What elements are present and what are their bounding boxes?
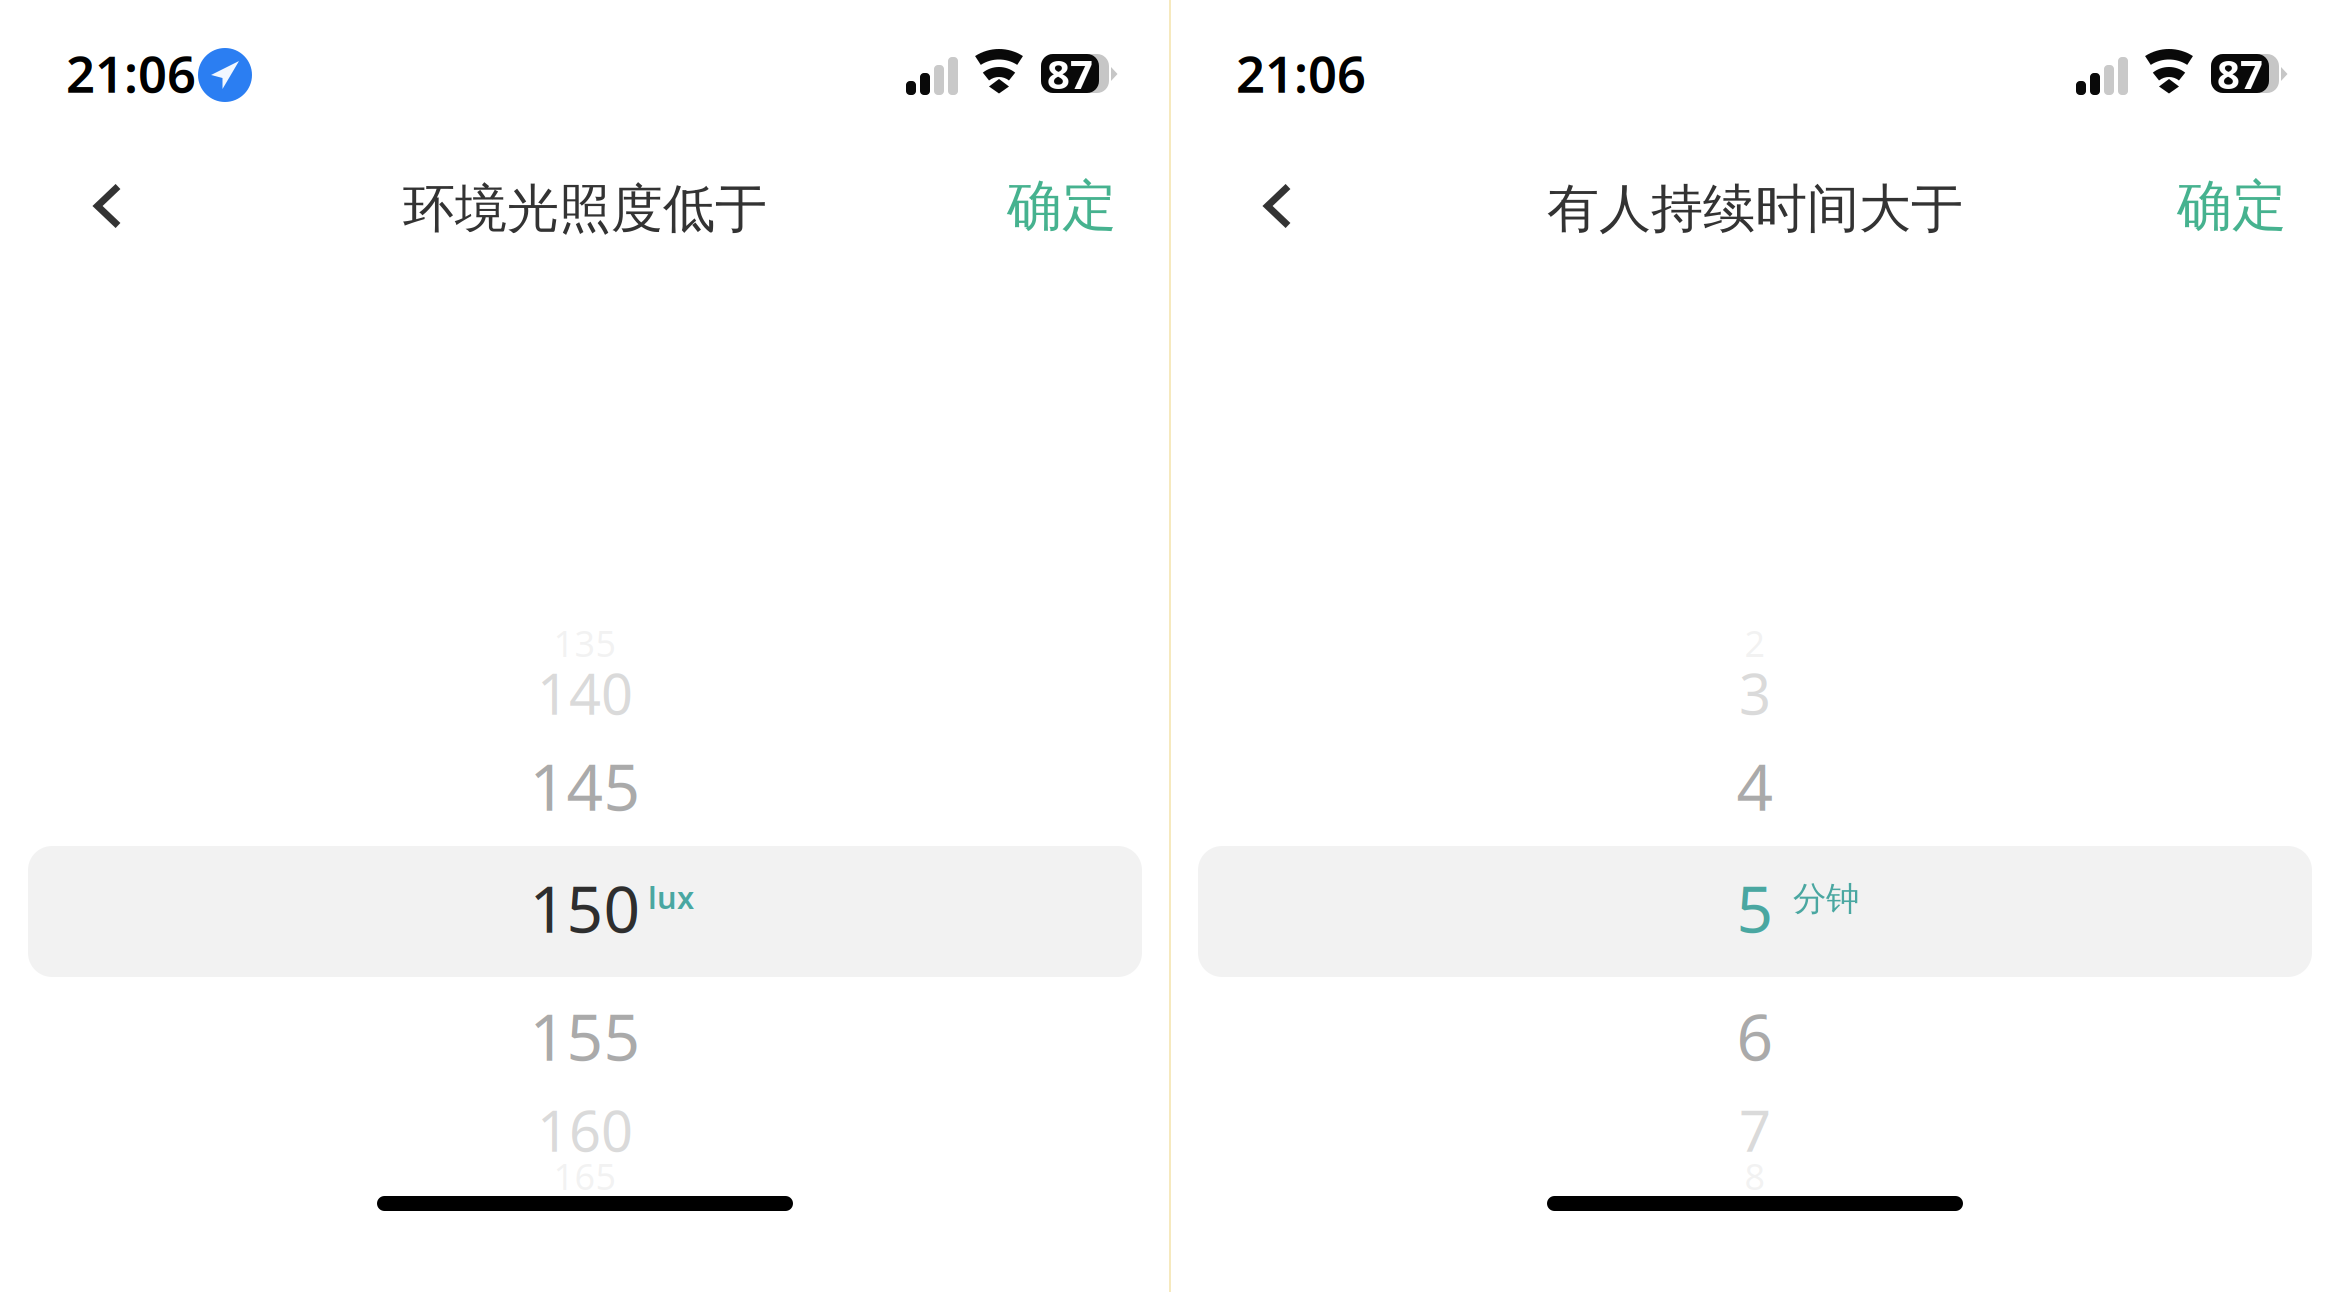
staticText: 87 xyxy=(1047,47,1093,100)
button[interactable]: 140 xyxy=(0,0,1170,92)
staticText: 2 xyxy=(1744,619,1765,667)
button[interactable]: 145 xyxy=(0,0,1170,112)
staticText: 环境光照度低于 xyxy=(403,177,767,241)
button[interactable]: 7 xyxy=(1170,0,2340,92)
staticText: 有人持续时间大于 xyxy=(1547,177,1963,241)
staticText: 4 xyxy=(1736,743,1773,828)
button[interactable]: 返回 xyxy=(1170,0,1282,90)
button[interactable]: 3 xyxy=(1170,0,2340,92)
staticText: 3 xyxy=(1739,656,1771,730)
staticText: 5 xyxy=(1736,865,1773,950)
staticText: 21:06 xyxy=(66,39,196,107)
button[interactable]: 4 xyxy=(1170,0,2340,112)
staticText: 160 xyxy=(537,1093,633,1167)
staticText: 145 xyxy=(529,743,640,828)
staticText: 确定 xyxy=(1007,172,1117,239)
button[interactable]: 160 xyxy=(0,0,1170,92)
staticText: 分钟 xyxy=(1793,878,1859,919)
staticText: 8 xyxy=(1744,1152,1765,1200)
staticText: 7 xyxy=(1739,1093,1771,1167)
button[interactable]: 确定 xyxy=(1170,0,1302,86)
button[interactable]: 确定 xyxy=(0,0,132,86)
staticText: 6 xyxy=(1736,993,1773,1078)
button[interactable]: 150 xyxy=(0,0,1170,131)
staticText: 155 xyxy=(529,993,640,1078)
button[interactable]: 返回 xyxy=(0,0,112,90)
staticText: 确定 xyxy=(2177,172,2287,239)
staticText: 87 xyxy=(2217,47,2263,100)
button[interactable]: 5 xyxy=(1170,0,2340,131)
staticText: 140 xyxy=(537,656,633,730)
button[interactable]: 6 xyxy=(1170,0,2340,112)
staticText: 21:06 xyxy=(1236,39,1366,107)
staticText: 135 xyxy=(553,619,616,667)
staticText: 150 xyxy=(529,865,640,950)
button[interactable]: 155 xyxy=(0,0,1170,112)
staticText: lux xyxy=(648,877,694,917)
staticText: 165 xyxy=(553,1152,616,1200)
